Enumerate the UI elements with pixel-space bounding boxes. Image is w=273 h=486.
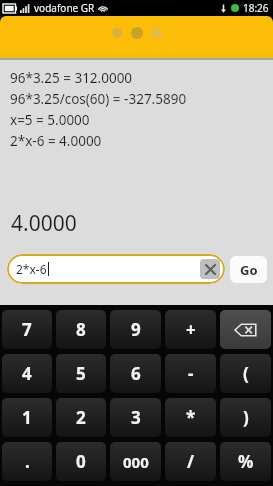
- staticText: 0: [76, 450, 86, 473]
- staticText: 3: [131, 406, 141, 429]
- button[interactable]: 2: [56, 398, 106, 437]
- staticText: 1: [22, 406, 32, 429]
- button[interactable]: 3: [110, 398, 161, 437]
- button[interactable]: 8: [56, 310, 106, 349]
- staticText: ): [243, 406, 249, 429]
- button[interactable]: 6: [110, 354, 161, 393]
- staticText: vodafone GR: [34, 1, 95, 15]
- button[interactable]: 9: [110, 310, 161, 349]
- button[interactable]: [112, 28, 122, 38]
- staticText: *: [186, 406, 196, 429]
- staticText: 8: [76, 318, 86, 341]
- button[interactable]: Go: [230, 256, 267, 283]
- button[interactable]: 5: [56, 354, 106, 393]
- staticText: /: [187, 450, 195, 473]
- button[interactable]: Clear: [200, 259, 220, 279]
- button[interactable]: 0: [56, 442, 106, 481]
- staticText: 96*3.25/cos(60) = -327.5890: [10, 90, 187, 108]
- button[interactable]: [131, 27, 143, 39]
- button[interactable]: .: [2, 442, 52, 481]
- button[interactable]: [152, 28, 162, 38]
- staticText: 6: [131, 362, 141, 385]
- staticText: Go: [240, 261, 258, 279]
- staticText: %: [238, 450, 254, 473]
- button[interactable]: -: [165, 354, 216, 393]
- staticText: 2*x-6: [16, 261, 47, 277]
- button[interactable]: Backspace: [220, 310, 271, 349]
- staticText: 5: [76, 362, 86, 385]
- staticText: 2: [76, 406, 86, 429]
- staticText: 96*3.25 = 312.0000: [10, 69, 133, 87]
- button[interactable]: /: [165, 442, 216, 481]
- staticText: x=5 = 5.0000: [10, 111, 90, 129]
- staticText: 000: [123, 452, 149, 472]
- button[interactable]: 1: [2, 398, 52, 437]
- button[interactable]: +: [165, 310, 216, 349]
- staticText: 4.0000: [11, 209, 77, 238]
- staticText: (: [243, 362, 249, 385]
- staticText: 7: [22, 318, 32, 341]
- button[interactable]: %: [220, 442, 271, 481]
- button[interactable]: (: [220, 354, 271, 393]
- staticText: .: [25, 450, 30, 473]
- button[interactable]: 7: [2, 310, 52, 349]
- staticText: 4: [22, 362, 32, 385]
- staticText: 9: [131, 318, 141, 341]
- staticText: 2*x-6 = 4.0000: [10, 132, 102, 150]
- button[interactable]: 2*x-6: [7, 254, 225, 284]
- button[interactable]: *: [165, 398, 216, 437]
- staticText: -: [188, 362, 194, 385]
- button[interactable]: 000: [110, 442, 161, 481]
- button[interactable]: 4: [2, 354, 52, 393]
- staticText: +: [186, 318, 196, 341]
- staticText: 18:26: [243, 1, 269, 15]
- button[interactable]: ): [220, 398, 271, 437]
